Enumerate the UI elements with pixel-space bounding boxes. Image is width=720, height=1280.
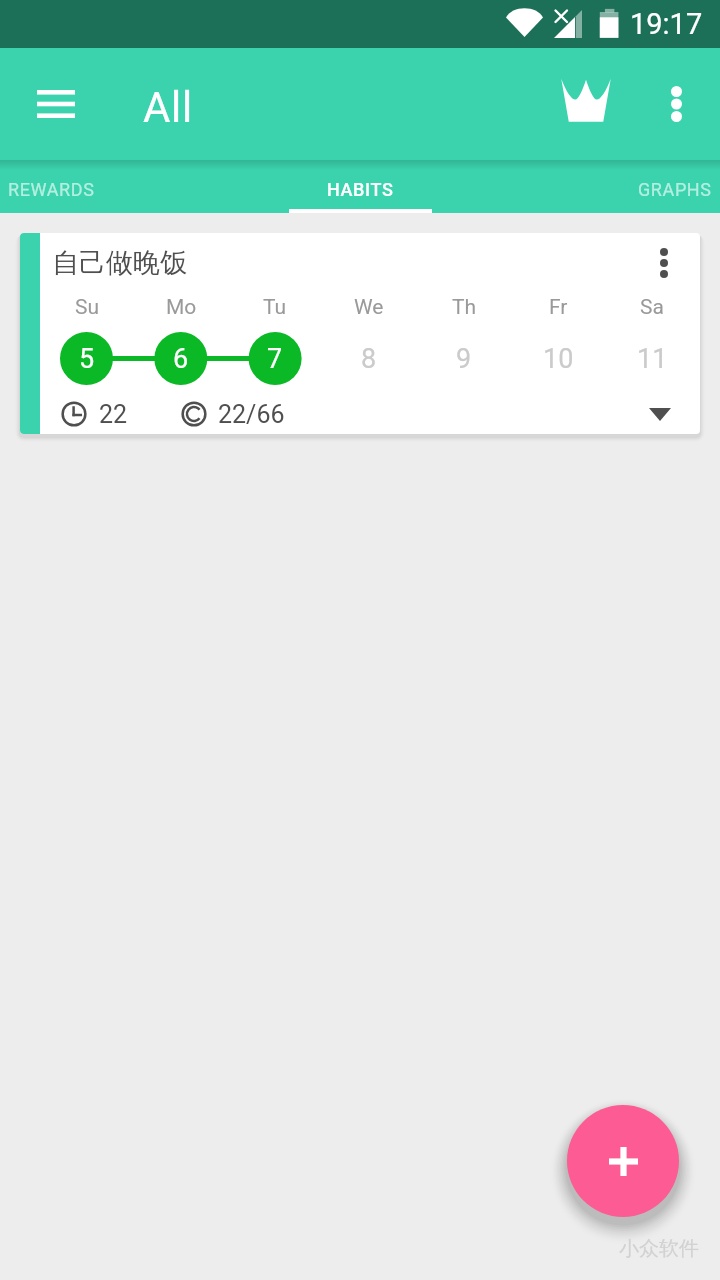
staticText: We — [354, 295, 384, 320]
staticText: Fr — [549, 295, 568, 320]
staticText: 自己做晚饭 — [52, 246, 187, 280]
staticText: 10 — [543, 343, 574, 375]
button[interactable]: 9 — [434, 331, 494, 386]
button[interactable]: 自己做晚饭 — [20, 233, 700, 434]
staticText: 22 — [99, 400, 128, 428]
staticText: 6 — [173, 343, 189, 375]
button[interactable]: Tu — [228, 286, 322, 328]
button[interactable]: 7 — [245, 331, 305, 386]
button[interactable]: HABITS — [240, 160, 480, 213]
staticText: Su — [75, 295, 100, 320]
staticText: 小众软件 — [619, 1236, 699, 1261]
button[interactable]: 10 — [528, 331, 588, 386]
button[interactable]: Th — [417, 286, 511, 328]
staticText: All — [143, 83, 193, 132]
staticText: Sa — [640, 295, 664, 320]
staticText: Mo — [166, 295, 197, 320]
button[interactable]: Habit options — [636, 235, 692, 291]
staticText: 11 — [637, 343, 668, 375]
staticText: 8 — [361, 343, 377, 375]
staticText: Th — [452, 295, 477, 320]
button[interactable]: Open navigation drawer — [18, 66, 94, 142]
button[interactable]: REWARDS — [0, 160, 240, 213]
button[interactable]: 6 — [151, 331, 211, 386]
staticText: REWARDS — [8, 179, 95, 200]
button[interactable]: 11 — [622, 331, 682, 386]
button[interactable]: We — [322, 286, 416, 328]
button[interactable]: Fr — [511, 286, 605, 328]
staticText: 5 — [79, 343, 95, 375]
staticText: 9 — [456, 343, 472, 375]
staticText: GRAPHS — [638, 179, 712, 200]
button[interactable]: Expand habit — [632, 386, 688, 434]
button[interactable]: Show archived habits — [544, 58, 628, 142]
staticText: 19:17 — [630, 7, 703, 41]
button[interactable]: Add habit — [567, 1105, 679, 1217]
button[interactable]: Sa — [605, 286, 699, 328]
button[interactable]: Su — [40, 286, 134, 328]
button[interactable]: More options — [634, 62, 718, 146]
staticText: Tu — [263, 295, 287, 320]
button[interactable]: GRAPHS — [480, 160, 720, 213]
staticText: 22/66 — [218, 400, 285, 428]
button[interactable]: 5 — [57, 331, 117, 386]
staticText: 7 — [267, 343, 283, 375]
button[interactable]: Mo — [134, 286, 228, 328]
button[interactable]: 8 — [339, 331, 399, 386]
staticText: HABITS — [327, 179, 394, 200]
